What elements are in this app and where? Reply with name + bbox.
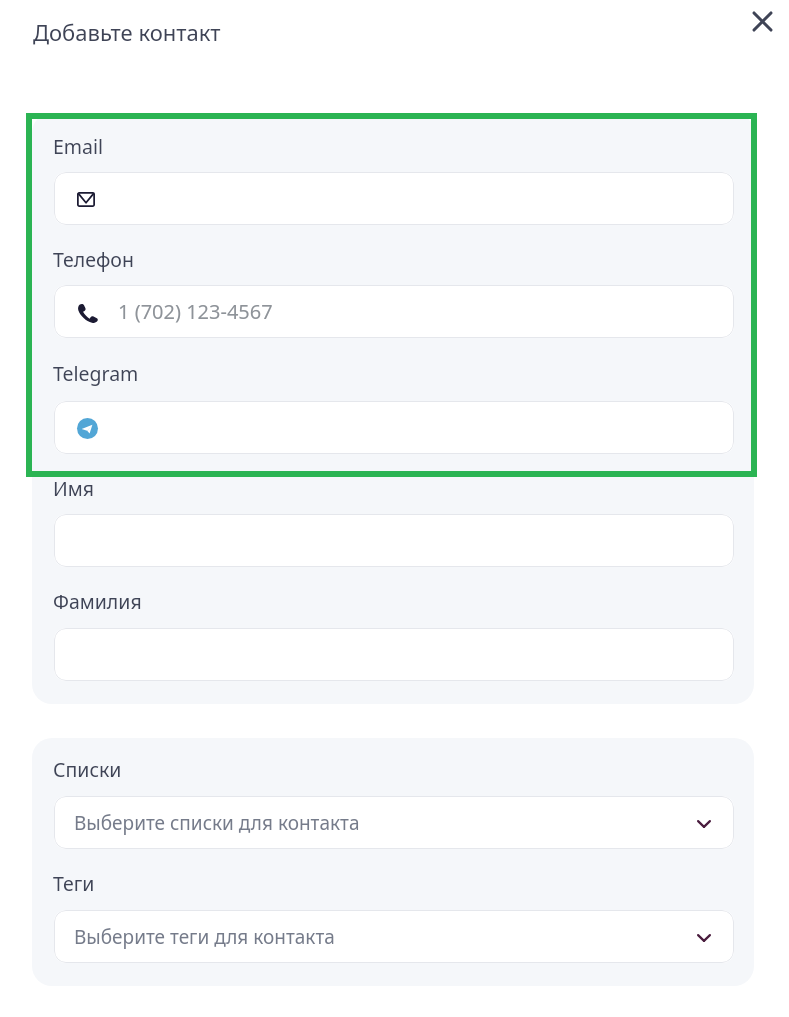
staticText: Теги bbox=[53, 870, 95, 897]
staticText: Списки bbox=[53, 756, 122, 783]
button[interactable]: Close bbox=[740, 0, 784, 43]
button[interactable]: Email bbox=[54, 172, 734, 225]
staticText: Имя bbox=[53, 475, 94, 502]
button[interactable]: Теги bbox=[54, 910, 734, 963]
staticText: Выберите списки для контакта bbox=[74, 810, 360, 836]
button[interactable]: Телефон bbox=[54, 285, 734, 338]
button[interactable]: Списки bbox=[54, 796, 734, 849]
staticText: Фамилия bbox=[53, 588, 142, 615]
staticText: Выберите теги для контакта bbox=[74, 924, 335, 950]
button[interactable]: Telegram bbox=[54, 401, 734, 454]
staticText: Добавьте контакт bbox=[33, 17, 221, 47]
button[interactable]: Имя bbox=[54, 514, 734, 567]
staticText: 1 (702) 123-4567 bbox=[118, 298, 273, 325]
staticText: Email bbox=[53, 133, 104, 160]
staticText: Telegram bbox=[53, 360, 139, 387]
staticText: Телефон bbox=[53, 246, 134, 273]
other: Expand bbox=[697, 934, 711, 942]
other: Expand bbox=[697, 820, 711, 828]
button[interactable]: Фамилия bbox=[54, 628, 734, 681]
